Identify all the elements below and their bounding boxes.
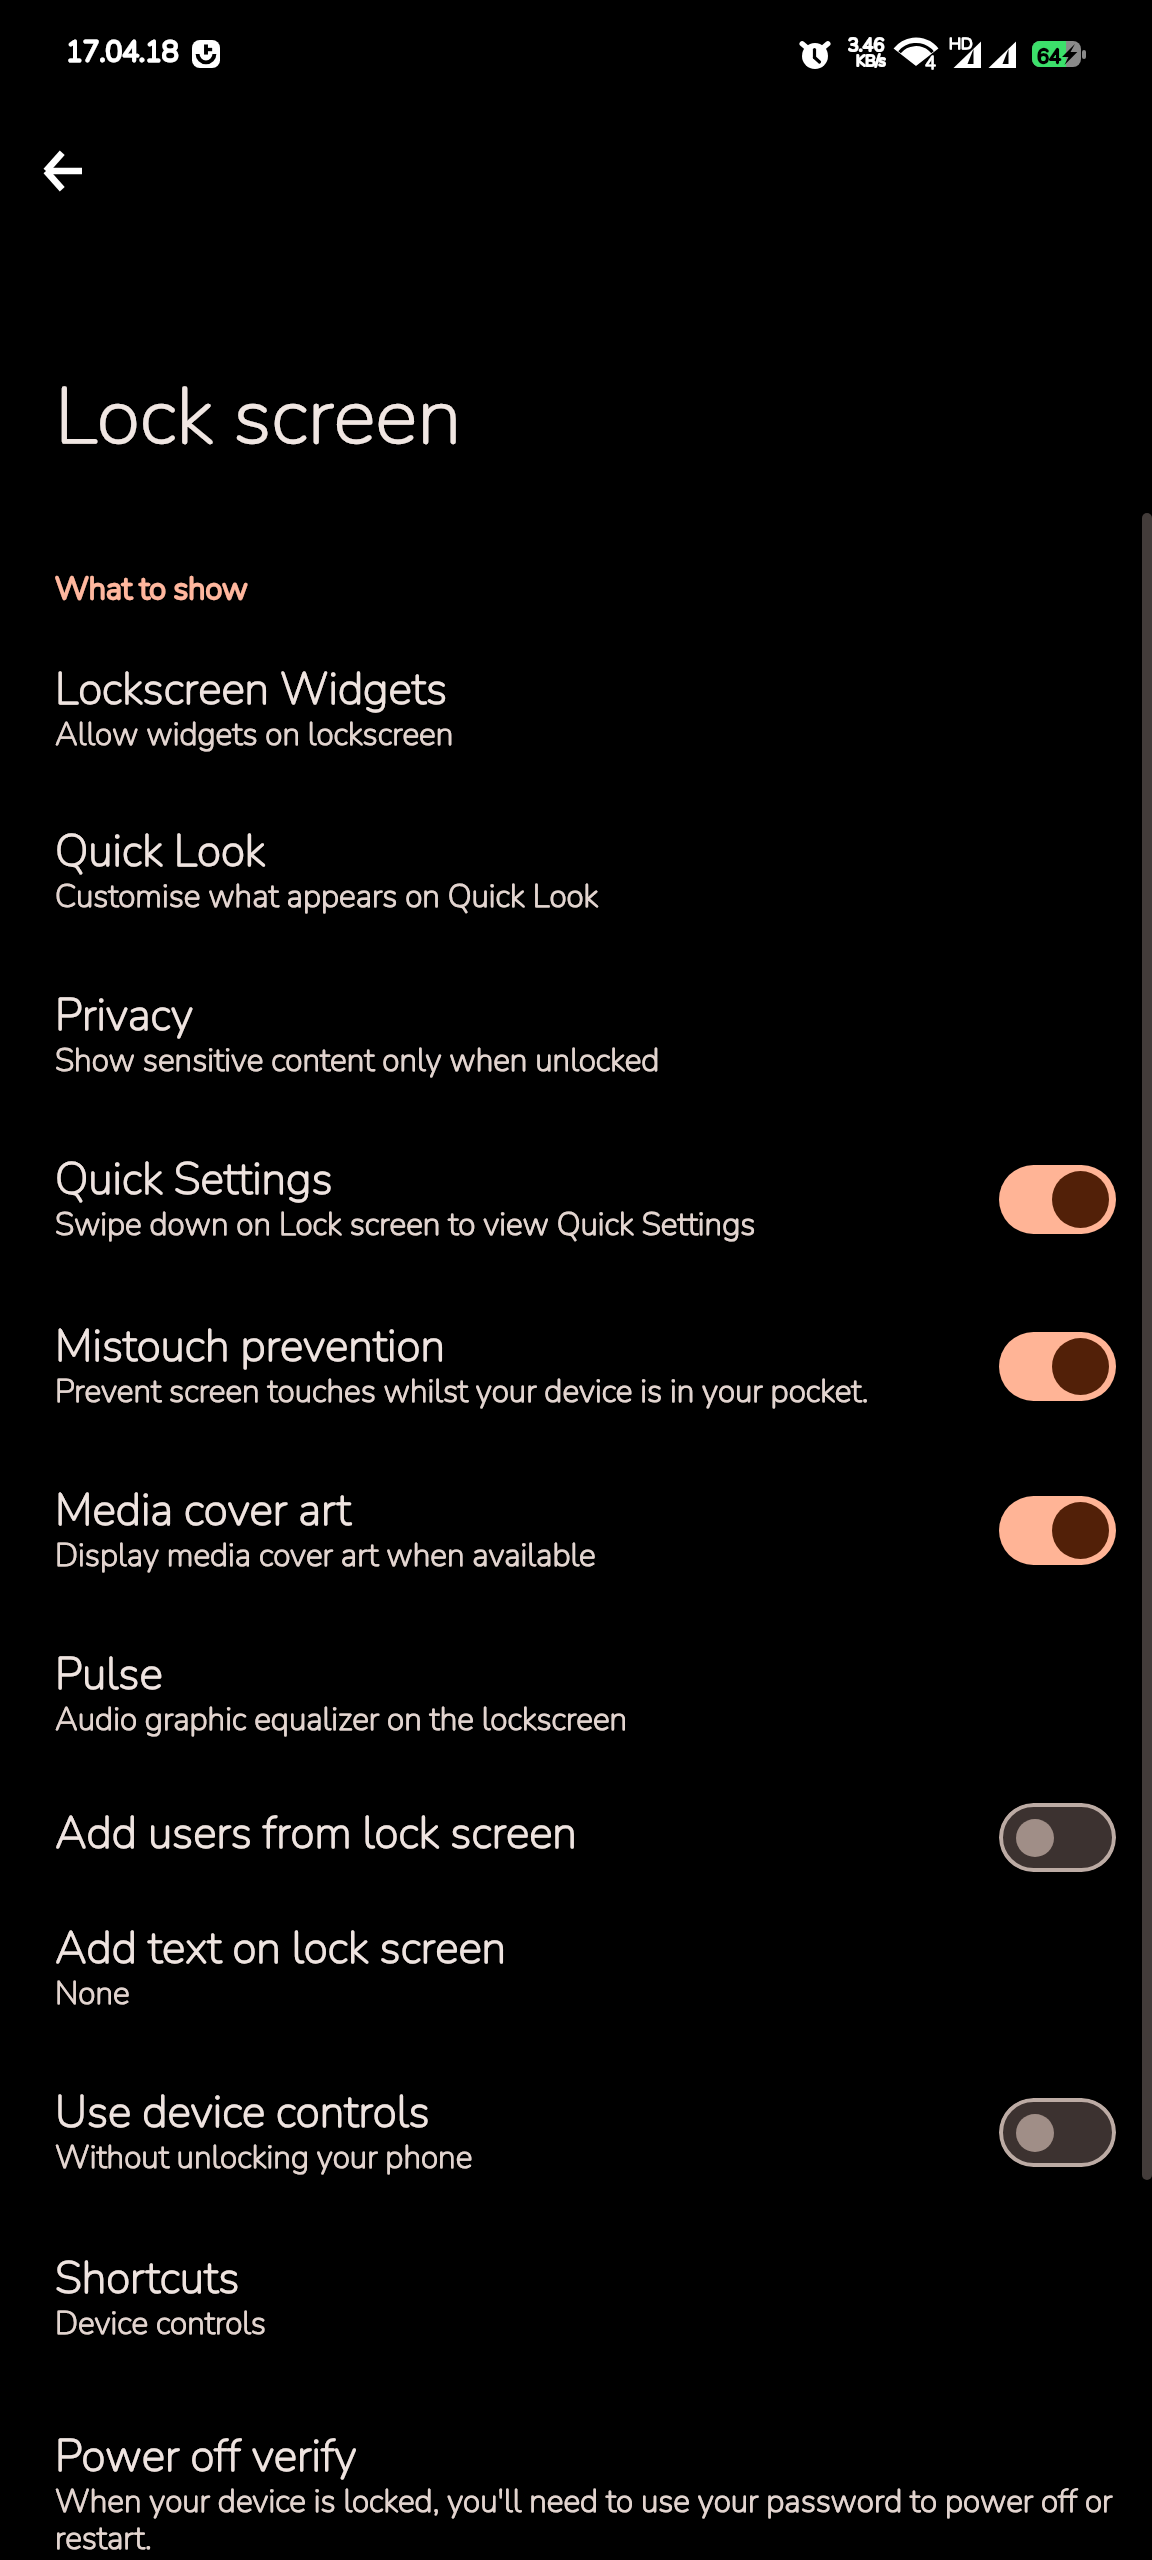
staticText: Audio graphic equalizer on the lockscree… (55, 1703, 628, 1740)
staticText: 64 (1037, 44, 1061, 67)
staticText: KB/s (856, 54, 886, 70)
staticText: 3.46 (848, 33, 885, 58)
staticText: Prevent screen touches whilst your devic… (55, 1375, 869, 1412)
staticText: Mistouch prevention (55, 1321, 445, 1375)
staticText: HD (949, 34, 973, 54)
staticText: What to show (55, 569, 248, 609)
staticText: Swipe down on Lock screen to view Quick … (55, 1208, 756, 1245)
button[interactable]: Lockscreen Widgets (0, 625, 1152, 785)
button[interactable]: Power off verify (0, 2379, 1152, 2560)
staticText: Allow widgets on lockscreen (55, 718, 454, 755)
staticText: Display media cover art when available (55, 1539, 596, 1576)
staticText: Mistouch prevention (55, 1321, 445, 1375)
button[interactable]: Back (13, 121, 113, 221)
staticText: Add users from lock screen (55, 1808, 577, 1862)
button[interactable]: Use device controls (0, 2049, 1152, 2209)
staticText: Quick Look (55, 826, 266, 880)
staticText: Use device controls (55, 2087, 430, 2141)
button[interactable]: Quick Settings (0, 1116, 1152, 1278)
staticText: Power off verify (55, 2431, 357, 2485)
staticText: 17.04.18 (66, 35, 179, 70)
staticText: Swipe down on Lock screen to view Quick … (55, 1208, 756, 1245)
staticText: Add text on lock screen (55, 1923, 507, 1977)
staticText: Device controls (55, 2307, 266, 2344)
staticText: Privacy (55, 990, 194, 1044)
staticText: 4 (925, 52, 936, 75)
button[interactable]: Media cover art (0, 1447, 1152, 1607)
staticText: Quick Look (55, 826, 266, 880)
staticText: Show sensitive content only when unlocke… (55, 1044, 660, 1081)
staticText: Lock screen (55, 370, 462, 468)
staticText: Audio graphic equalizer on the lockscree… (55, 1703, 628, 1740)
staticText: 64 (1037, 44, 1061, 67)
button[interactable]: Shortcuts (0, 2213, 1152, 2375)
button[interactable]: Enabled, toggle switch (999, 1496, 1116, 1565)
staticText: Media cover art (55, 1485, 351, 1539)
staticText: Media cover art (55, 1485, 351, 1539)
staticText: Pulse (55, 1649, 163, 1703)
staticText: 17.04.18 (66, 35, 179, 70)
staticText: Shortcuts (55, 2253, 240, 2307)
staticText: Customise what appears on Quick Look (55, 880, 599, 917)
staticText: What to show (55, 569, 248, 609)
button[interactable]: Enabled, toggle switch (999, 1332, 1116, 1401)
button[interactable]: Enabled, toggle switch (999, 1165, 1116, 1234)
staticText: Pulse (55, 1649, 163, 1703)
staticText: Lockscreen Widgets (55, 664, 447, 718)
staticText: Device controls (55, 2307, 266, 2344)
staticText: Lock screen (55, 370, 462, 468)
staticText: None (55, 1977, 130, 2014)
staticText: 3.46 (848, 33, 885, 58)
staticText: Add users from lock screen (55, 1808, 577, 1862)
staticText: When your device is locked, you'll need … (55, 2485, 1117, 2559)
button[interactable]: Privacy (0, 952, 1152, 1112)
staticText: Customise what appears on Quick Look (55, 880, 599, 917)
staticText: Use device controls (55, 2087, 430, 2141)
staticText: HD (949, 34, 973, 54)
staticText: Prevent screen touches whilst your devic… (55, 1375, 869, 1412)
staticText: 4 (925, 52, 936, 75)
staticText: KB/s (856, 54, 886, 70)
staticText: When your device is locked, you'll need … (55, 2485, 1117, 2559)
staticText: None (55, 1977, 130, 2014)
button[interactable]: Mistouch prevention (0, 1282, 1152, 1443)
staticText: Power off verify (55, 2431, 357, 2485)
button[interactable]: Pulse (0, 1611, 1152, 1771)
staticText: Display media cover art when available (55, 1539, 596, 1576)
staticText: Add text on lock screen (55, 1923, 507, 1977)
staticText: Lockscreen Widgets (55, 664, 447, 718)
staticText: Quick Settings (55, 1154, 333, 1208)
staticText: Shortcuts (55, 2253, 240, 2307)
staticText: Allow widgets on lockscreen (55, 718, 454, 755)
button[interactable]: Disabled, toggle switch (999, 1803, 1116, 1872)
staticText: Without unlocking your phone (55, 2141, 473, 2178)
button[interactable]: Quick Look (0, 789, 1152, 948)
button[interactable]: Add text on lock screen (0, 1884, 1152, 2045)
staticText: Privacy (55, 990, 194, 1044)
button[interactable]: Add users from lock screen (0, 1775, 1152, 1880)
staticText: Show sensitive content only when unlocke… (55, 1044, 660, 1081)
button[interactable]: Disabled, toggle switch (999, 2098, 1116, 2167)
staticText: Without unlocking your phone (55, 2141, 473, 2178)
staticText: Quick Settings (55, 1154, 333, 1208)
